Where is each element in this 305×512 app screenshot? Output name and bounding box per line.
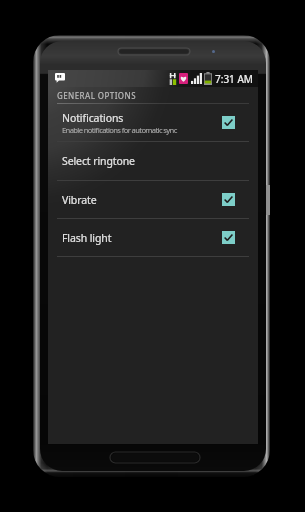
staticText: Vibrate <box>62 193 97 207</box>
button[interactable]: Select ringtone <box>48 142 258 181</box>
button[interactable]: Flash light <box>48 219 258 257</box>
staticText: GENERAL OPTIONS <box>57 90 136 101</box>
staticText: Select ringtone <box>62 154 135 168</box>
staticText: Flash light <box>62 231 112 245</box>
staticText: Enable notifications for automatic sync <box>62 125 177 135</box>
staticText: Notifications <box>62 111 124 125</box>
button[interactable]: Notifications <box>48 104 258 142</box>
staticText: 7:31 AM <box>215 72 253 86</box>
button[interactable]: Vibrate <box>48 181 258 219</box>
